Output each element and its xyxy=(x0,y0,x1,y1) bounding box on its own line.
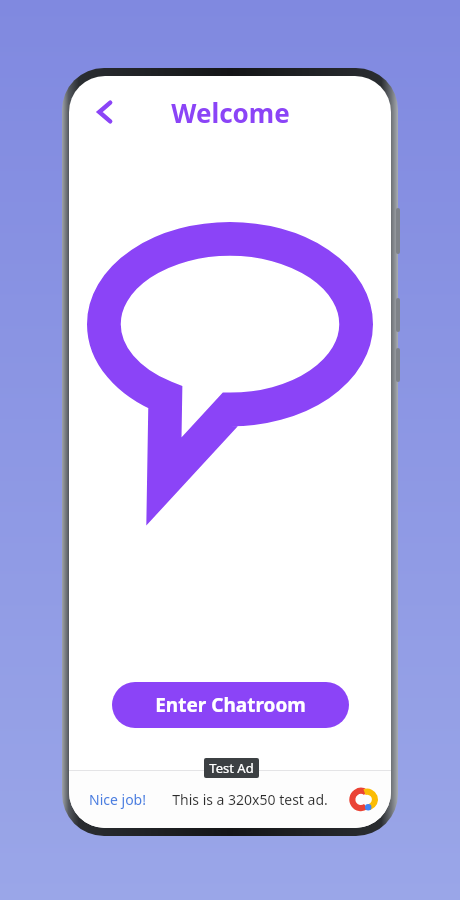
button[interactable]: Nice job! xyxy=(69,771,391,828)
staticText: Test Ad xyxy=(209,759,254,777)
staticText: Welcome xyxy=(171,95,290,130)
staticText: This is a 320x50 test ad. xyxy=(172,790,328,809)
button[interactable]: Back xyxy=(81,88,129,136)
staticText: Enter Chatroom xyxy=(155,692,306,718)
staticText: Nice job! xyxy=(89,790,146,809)
button[interactable]: Enter Chatroom xyxy=(112,682,349,728)
